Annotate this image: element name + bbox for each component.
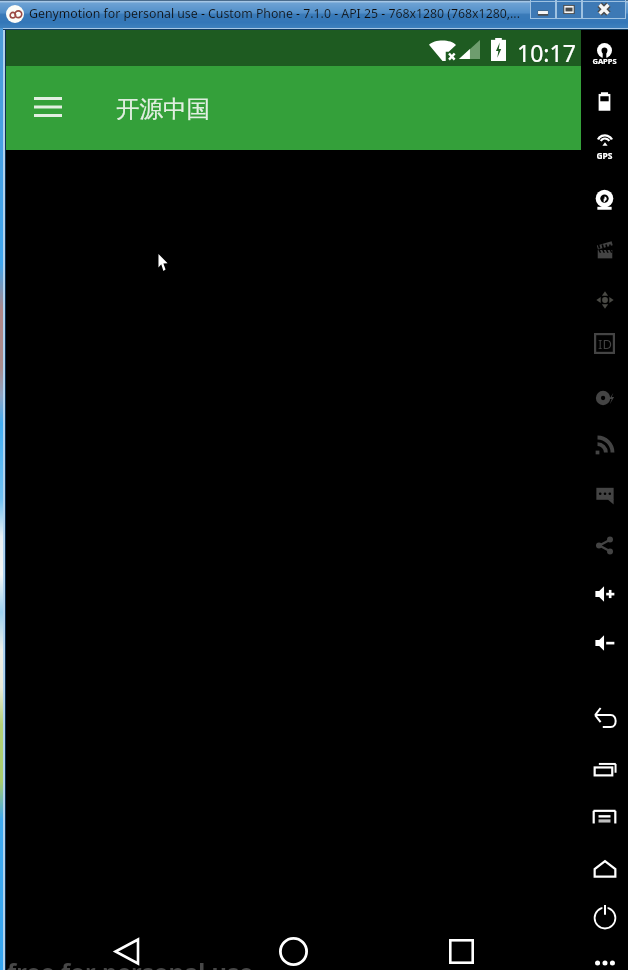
- button[interactable]: Recents: [581, 746, 628, 792]
- button[interactable]: Volume up: [581, 571, 628, 617]
- button[interactable]: Battery: [581, 78, 628, 124]
- staticText: 开源中国: [116, 94, 210, 124]
- staticText: Genymotion for personal use - Custom Pho…: [29, 5, 520, 22]
- button[interactable]: More: [581, 940, 628, 970]
- staticText: ID: [598, 335, 612, 353]
- button[interactable]: Record: [581, 227, 628, 273]
- staticText: GAPPS: [592, 56, 617, 66]
- button[interactable]: Back: [581, 696, 628, 742]
- button[interactable]: Camera: [581, 177, 628, 223]
- button[interactable]: GAPPS: [581, 27, 628, 73]
- button[interactable]: D-pad: [581, 277, 628, 323]
- button[interactable]: Power: [581, 893, 628, 939]
- button[interactable]: Window button: [530, 0, 556, 19]
- button[interactable]: Messages: [581, 472, 628, 518]
- button[interactable]: Identifiers: [581, 320, 628, 366]
- button[interactable]: Recents: [437, 928, 485, 970]
- staticText: 10:17: [517, 37, 576, 68]
- staticText: GPS: [596, 150, 613, 162]
- button[interactable]: GPS: [581, 118, 628, 164]
- other: Wi-Fi: [429, 39, 456, 61]
- button[interactable]: Volume down: [581, 620, 628, 666]
- button[interactable]: Back: [102, 928, 150, 970]
- staticText: free for personal use: [7, 956, 254, 970]
- button[interactable]: Network: [581, 422, 628, 468]
- button[interactable]: Window button: [582, 0, 626, 19]
- button[interactable]: Home: [581, 843, 628, 889]
- button[interactable]: Menu: [20, 84, 68, 132]
- button[interactable]: Home: [269, 928, 317, 970]
- button[interactable]: Share: [581, 522, 628, 568]
- button[interactable]: Window button: [556, 0, 582, 19]
- button[interactable]: Baseband: [581, 375, 628, 421]
- button[interactable]: Menu: [581, 794, 628, 840]
